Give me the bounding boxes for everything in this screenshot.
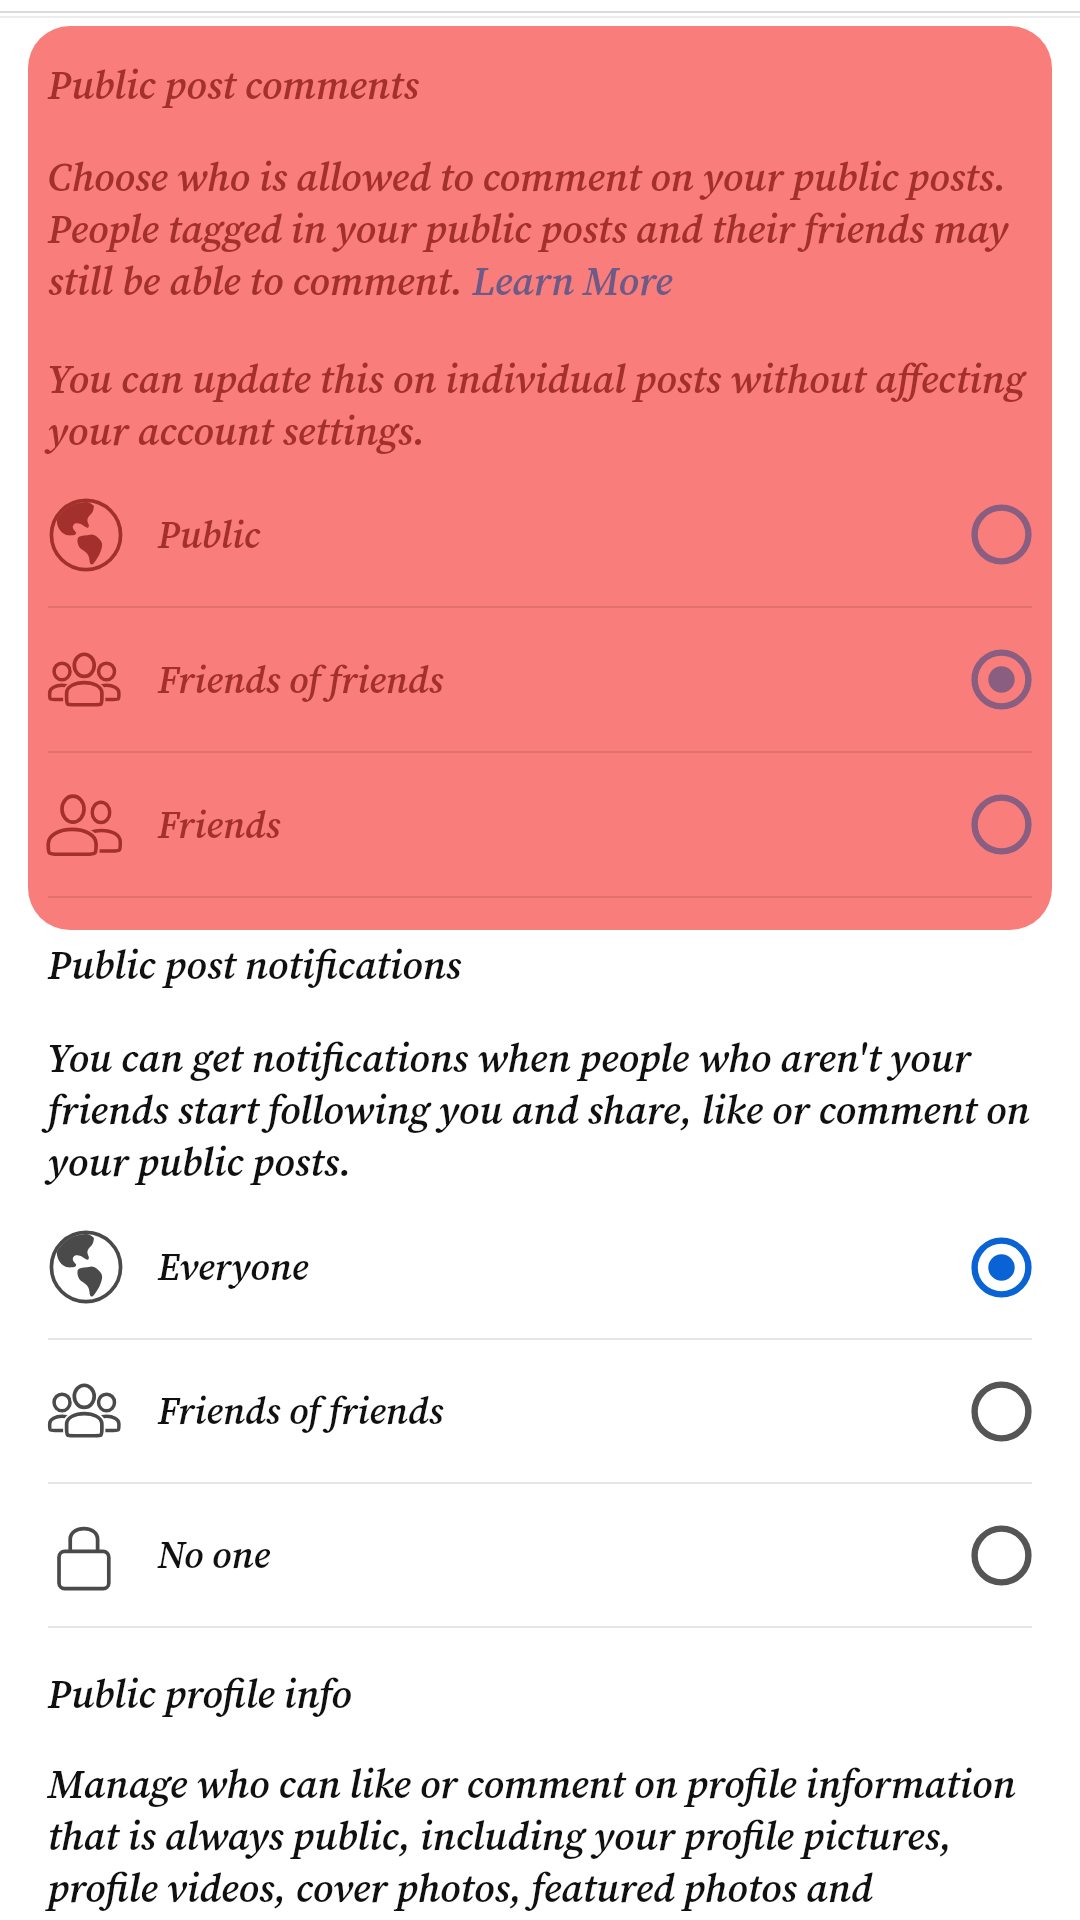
button[interactable]: No one [48, 1484, 1032, 1626]
staticText: Public profile info [48, 1667, 353, 1722]
other: Public [48, 497, 124, 573]
staticText: You can update this on individual posts … [48, 352, 1032, 459]
staticText: Everyone [158, 1241, 309, 1293]
button[interactable]: Choose who is allowed to comment on your… [28, 150, 1052, 309]
other: Select No one [971, 1525, 1032, 1586]
other: Friends [48, 787, 124, 863]
staticText: Manage who can like or comment on profil… [48, 1757, 1032, 1916]
button[interactable]: Public [28, 463, 1052, 606]
button[interactable]: Everyone [48, 1196, 1032, 1338]
staticText: No one [158, 1529, 271, 1581]
button[interactable]: Friends of friends [48, 1340, 1032, 1482]
other: Select Friends [971, 794, 1032, 855]
staticText: Public post comments [48, 58, 419, 113]
other: Friends of friends [48, 642, 124, 718]
staticText: Public post notifications [48, 938, 462, 993]
other: Everyone selected [971, 1237, 1032, 1298]
other: No one [48, 1517, 124, 1593]
other: Everyone [48, 1229, 124, 1305]
staticText: You can get notifications when people wh… [48, 1031, 1032, 1190]
button[interactable]: Friends of friends [28, 608, 1052, 751]
staticText: Public [158, 509, 261, 561]
staticText: Friends [158, 799, 281, 851]
other: Friends of friends [48, 1373, 124, 1449]
other: Select Public [971, 504, 1032, 565]
staticText: Friends of friends [158, 1385, 444, 1437]
other: Friends of friends selected [971, 649, 1032, 710]
button[interactable]: Friends [28, 753, 1052, 896]
staticText: Friends of friends [158, 654, 444, 706]
other: Select Friends of friends [971, 1381, 1032, 1442]
